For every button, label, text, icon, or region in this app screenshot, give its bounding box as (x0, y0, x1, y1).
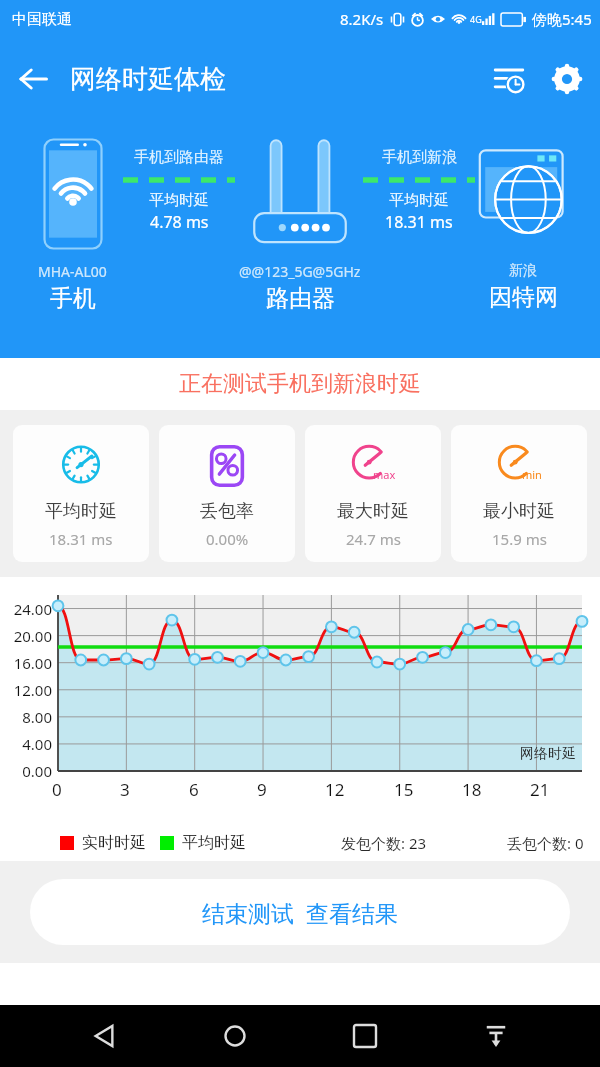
staticText: 18.31 ms (385, 211, 453, 233)
staticText: 实时时延 (82, 833, 146, 853)
staticText: 8.2K/s (340, 9, 384, 29)
staticText: 24.7 ms (346, 529, 401, 549)
button[interactable]: 平均时延 (13, 425, 149, 562)
button[interactable]: Hide navigation bar (469, 1009, 523, 1063)
staticText: 8.00 (0, 707, 52, 727)
staticText: 4G (470, 13, 482, 25)
staticText: 24.00 (0, 599, 52, 619)
staticText: 12.00 (0, 680, 52, 700)
button[interactable]: Settings (538, 50, 596, 108)
button[interactable]: History (480, 50, 538, 108)
staticText: 4.78 ms (150, 211, 209, 233)
staticText: 平均时延 (45, 500, 117, 523)
staticText: 网络时延 (520, 745, 576, 763)
staticText: 20.00 (0, 626, 52, 646)
staticText: 16.00 (0, 653, 52, 673)
staticText: 9 (257, 778, 267, 801)
staticText: 路由器 (266, 284, 335, 313)
button[interactable]: Back (4, 50, 62, 108)
staticText: 4.00 (0, 734, 52, 754)
button[interactable]: 丢包率 (159, 425, 295, 562)
staticText: MHA-AL00 (38, 262, 107, 281)
staticText: 15 (394, 778, 414, 801)
staticText: 3 (120, 778, 130, 801)
staticText: 15.9 ms (492, 529, 547, 549)
staticText: 发包个数: 23 (341, 833, 427, 853)
staticText: 最小时延 (483, 500, 555, 523)
button[interactable]: max (305, 425, 441, 562)
staticText: 平均时延 (182, 833, 246, 853)
staticText: 手机到新浪 (382, 148, 457, 167)
staticText: 0.00 (0, 761, 52, 781)
staticText: max (373, 467, 396, 482)
staticText: 网络时延体检 (70, 63, 226, 96)
staticText: 0 (52, 778, 62, 801)
staticText: min (522, 467, 542, 482)
staticText: 结束测试 查看结果 (202, 897, 398, 928)
staticText: @@123_5G@5GHz (239, 262, 361, 281)
staticText: 手机到路由器 (134, 148, 224, 167)
staticText: 6 (189, 778, 199, 801)
staticText: 12 (325, 778, 345, 801)
staticText: 因特网 (489, 283, 558, 312)
button[interactable]: Back (77, 1009, 131, 1063)
staticText: 丢包率 (200, 500, 254, 523)
staticText: 最大时延 (337, 500, 409, 523)
button[interactable]: Recents (338, 1009, 392, 1063)
button[interactable]: Home (208, 1009, 262, 1063)
staticText: 21 (530, 778, 550, 801)
staticText: 正在测试手机到新浪时延 (179, 370, 421, 398)
staticText: 新浪 (509, 262, 537, 280)
staticText: 平均时延 (149, 191, 209, 210)
staticText: 18.31 ms (49, 529, 113, 549)
staticText: 平均时延 (389, 191, 449, 210)
staticText: 中国联通 (12, 10, 72, 29)
staticText: 18 (462, 778, 482, 801)
staticText: 0.00% (206, 529, 249, 549)
staticText: 傍晚5:45 (532, 9, 592, 29)
button[interactable]: 结束测试 查看结果 (30, 879, 570, 945)
button[interactable]: min (451, 425, 587, 562)
staticText: 手机 (50, 284, 96, 313)
staticText: 丢包个数: 0 (507, 833, 584, 853)
